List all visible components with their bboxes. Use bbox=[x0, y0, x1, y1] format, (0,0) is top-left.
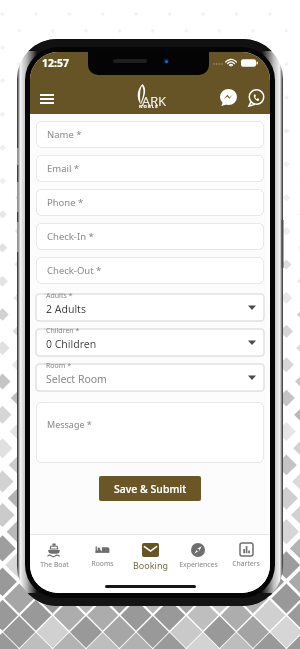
button[interactable]: Room * bbox=[36, 364, 264, 391]
staticText: Experiences bbox=[179, 560, 218, 569]
staticText: The Boat bbox=[40, 560, 69, 569]
staticText: Children * bbox=[46, 326, 80, 336]
button[interactable]: WhatsApp bbox=[245, 86, 267, 108]
staticText: Save & Submit bbox=[114, 482, 187, 496]
staticText: Message * bbox=[47, 418, 92, 430]
staticText: Email * bbox=[47, 162, 80, 175]
button[interactable]: Experiences bbox=[174, 543, 222, 583]
staticText: Rooms bbox=[91, 559, 114, 568]
button[interactable]: Email * bbox=[36, 155, 264, 182]
staticText: Phone * bbox=[47, 196, 84, 209]
button[interactable]: Charters bbox=[222, 543, 270, 583]
staticText: N O B L E bbox=[139, 104, 158, 110]
button[interactable]: Check-In * bbox=[36, 223, 264, 250]
button[interactable]: Messenger bbox=[217, 86, 239, 108]
staticText: Adults * bbox=[46, 291, 73, 301]
button[interactable]: The Boat bbox=[30, 543, 78, 583]
staticText: Check-In * bbox=[47, 230, 94, 243]
staticText: 0 Children bbox=[46, 337, 97, 351]
staticText: Name * bbox=[47, 128, 82, 141]
staticText: Room * bbox=[46, 361, 72, 371]
button[interactable]: Name * bbox=[36, 121, 264, 148]
staticText: ARK bbox=[142, 92, 167, 110]
button[interactable]: Phone * bbox=[36, 189, 264, 216]
staticText: Charters bbox=[232, 559, 260, 568]
staticText: Check-Out * bbox=[47, 264, 102, 277]
button[interactable]: Open menu bbox=[35, 87, 59, 111]
button[interactable]: Booking bbox=[126, 543, 174, 583]
button[interactable]: Children * bbox=[36, 329, 264, 356]
button[interactable]: Adults * bbox=[36, 294, 264, 321]
button[interactable]: Rooms bbox=[78, 543, 126, 583]
staticText: Select Room bbox=[46, 372, 107, 386]
staticText: Booking bbox=[133, 559, 168, 571]
staticText: 2 Adults bbox=[46, 302, 86, 316]
button[interactable]: Message * bbox=[36, 402, 264, 463]
button[interactable]: Save & Submit bbox=[99, 476, 201, 501]
button[interactable]: Check-Out * bbox=[36, 257, 264, 284]
staticText: 12:57 bbox=[42, 56, 69, 70]
